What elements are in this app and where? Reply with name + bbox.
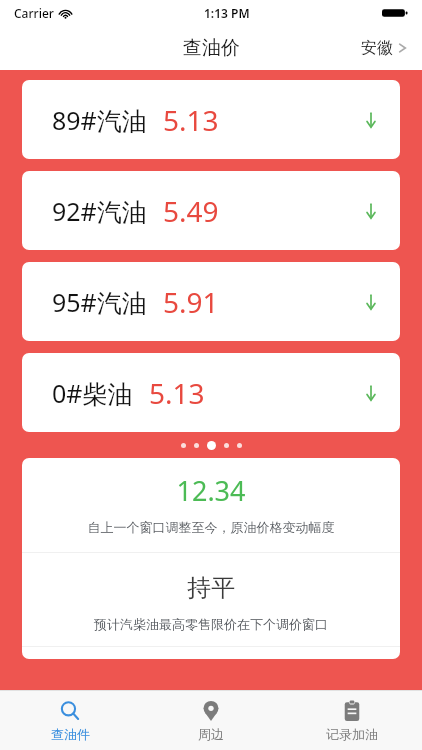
staticText: 自上一个窗口调整至今，原油价格变动幅度: [22, 519, 400, 535]
staticText: 记录加油: [326, 726, 378, 742]
button[interactable]: 安徽: [345, 30, 422, 66]
staticText: Carrier: [14, 5, 54, 21]
button[interactable]: 92#汽油: [22, 171, 400, 250]
staticText: 5.49: [163, 192, 219, 230]
staticText: 1:13 PM: [204, 5, 250, 21]
staticText: 安徽: [361, 38, 393, 58]
button[interactable]: 95#汽油: [22, 262, 400, 341]
staticText: 89#汽油: [52, 103, 147, 137]
staticText: 查油价: [183, 36, 240, 60]
staticText: 查油件: [51, 726, 90, 742]
button[interactable]: 89#汽油: [22, 80, 400, 159]
staticText: 95#汽油: [52, 285, 147, 319]
button[interactable]: 0#柴油: [22, 353, 400, 432]
staticText: 92#汽油: [52, 194, 147, 228]
staticText: 12.34: [22, 472, 400, 509]
staticText: 持平: [22, 573, 400, 603]
staticText: 预计汽柴油最高零售限价在下个调价窗口: [22, 616, 400, 632]
staticText: 5.13: [163, 101, 219, 139]
staticText: 5.13: [149, 374, 205, 412]
staticText: 5.91: [163, 283, 219, 321]
staticText: 周边: [198, 726, 224, 742]
staticText: 0#柴油: [52, 376, 133, 410]
button[interactable]: 周边: [140, 691, 281, 750]
button[interactable]: 查油件: [0, 691, 140, 750]
button[interactable]: 记录加油: [281, 691, 422, 750]
